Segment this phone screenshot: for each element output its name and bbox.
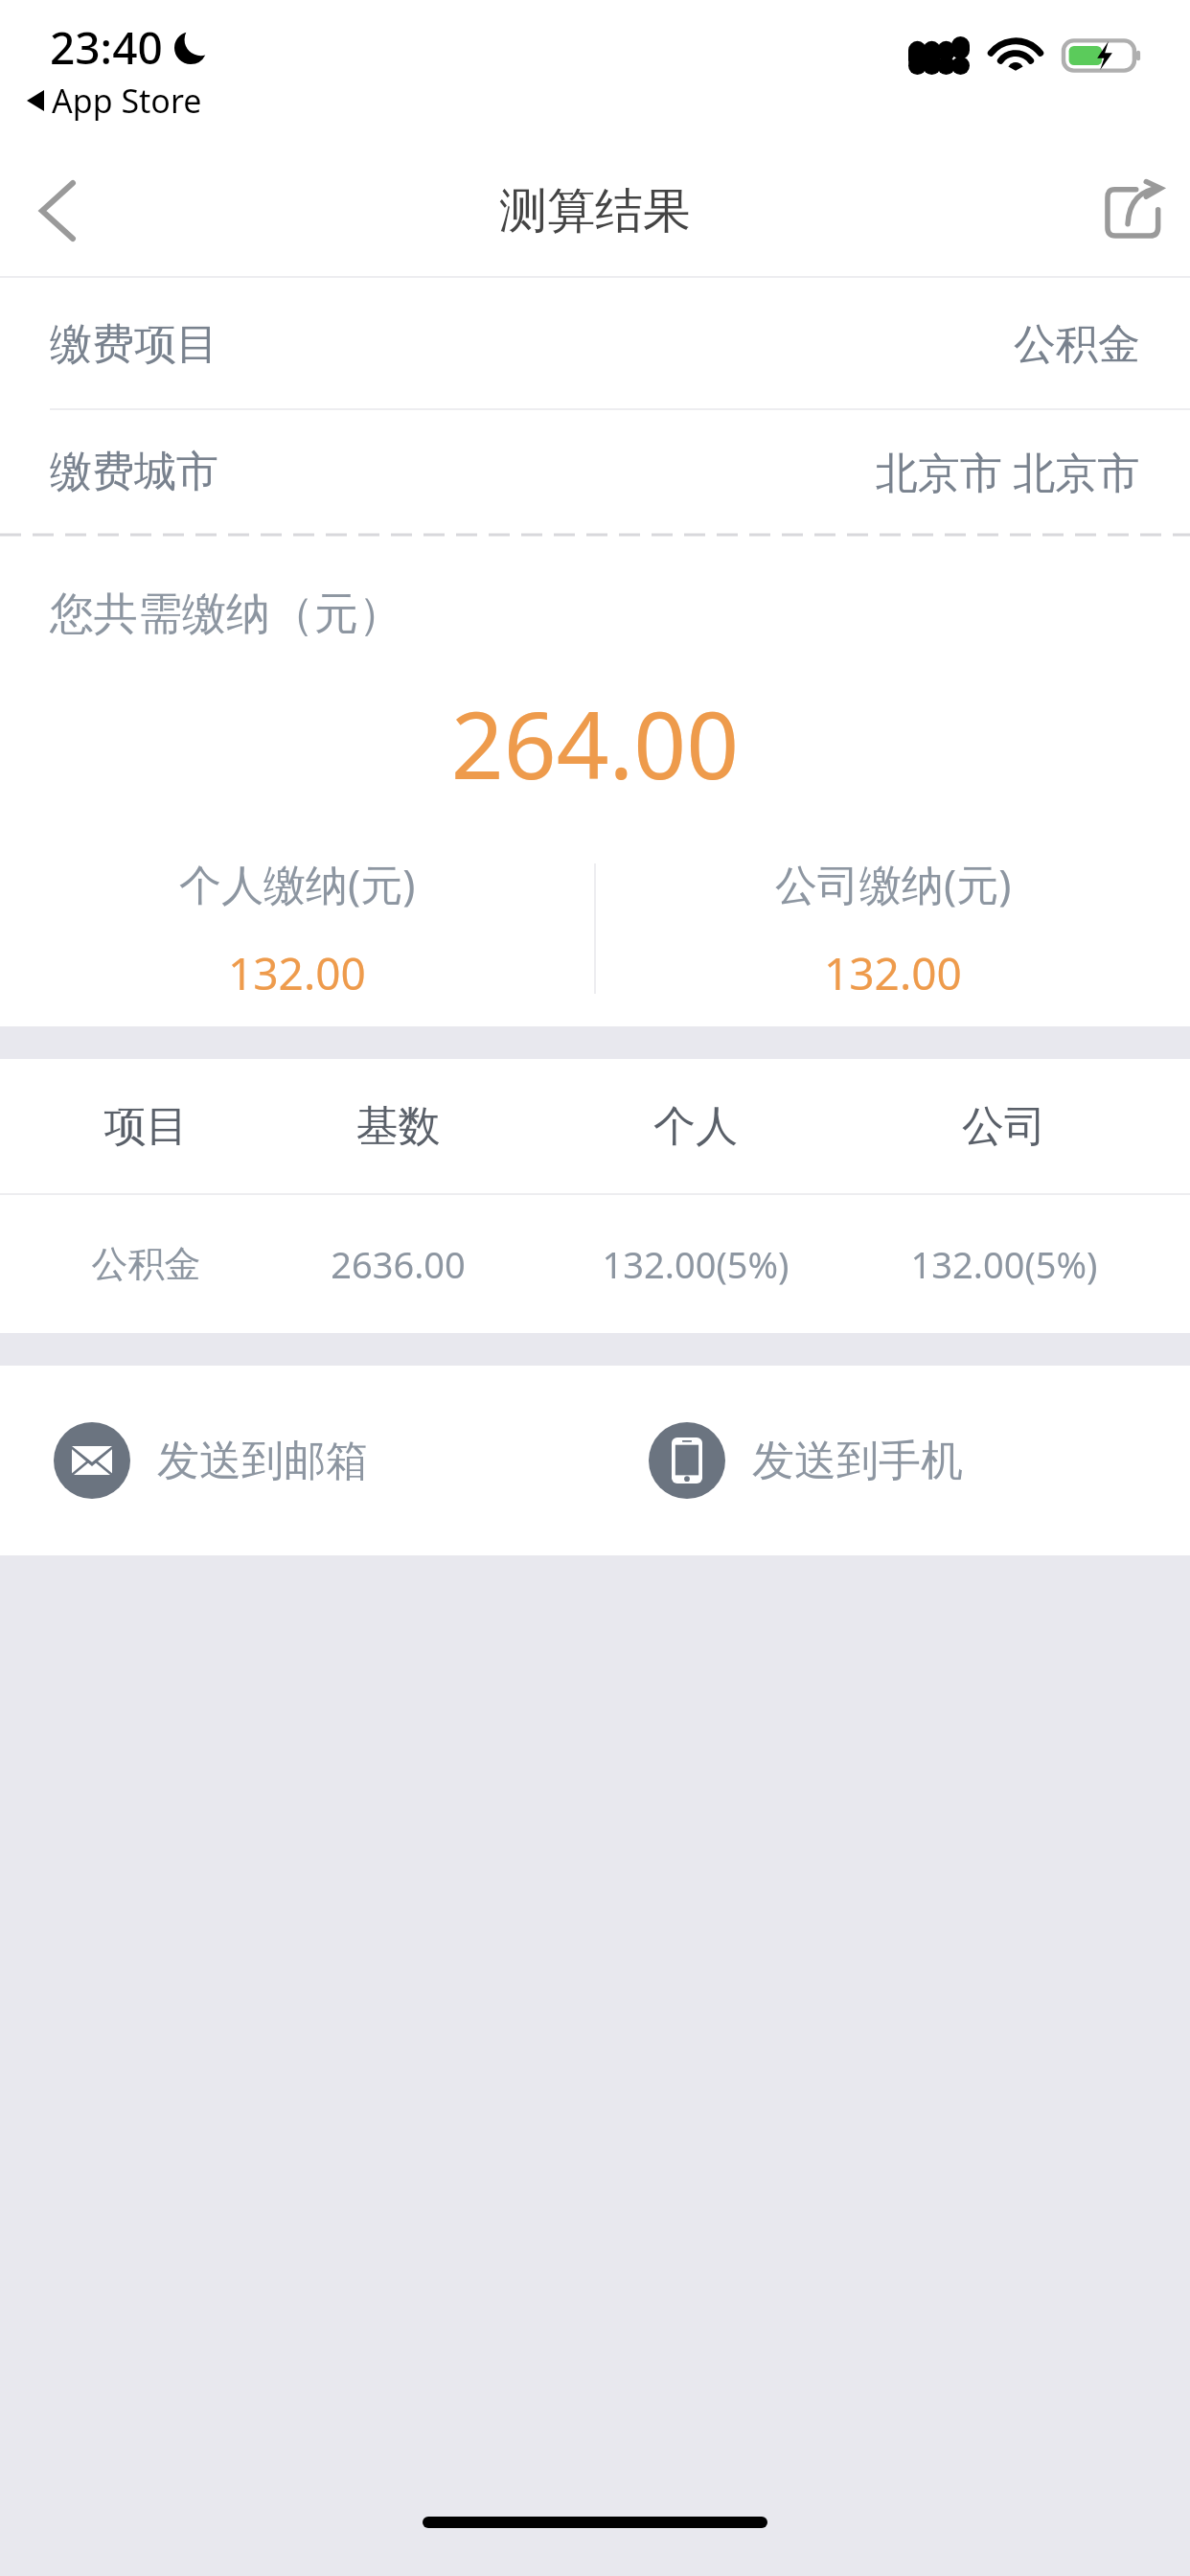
staticText: 个人缴纳(元) <box>179 855 416 912</box>
staticText: 23:40 <box>50 17 163 78</box>
staticText: 132.00(5%) <box>538 1239 853 1289</box>
staticText: 264.00 <box>0 680 1190 806</box>
staticText: 您共需缴纳（元） <box>50 586 402 642</box>
staticText: 公司缴纳(元) <box>775 855 1012 912</box>
staticText: 个人 <box>538 1100 853 1153</box>
staticText: 公司 <box>853 1100 1156 1153</box>
staticText: 基数 <box>258 1100 538 1153</box>
staticText: 132.00 <box>228 943 366 1003</box>
staticText: 缴费城市 <box>50 446 218 498</box>
button[interactable]: 发送到手机 <box>649 1422 963 1499</box>
staticText: 测算结果 <box>499 181 691 241</box>
staticText: 发送到邮箱 <box>157 1435 368 1487</box>
staticText: 缴费项目 <box>50 318 218 371</box>
button[interactable]: 缴费城市 <box>0 410 1190 533</box>
staticText: 132.00 <box>824 943 962 1003</box>
staticText: App Store <box>52 79 202 123</box>
button[interactable]: Back <box>0 153 115 268</box>
staticText: 项目 <box>34 1100 258 1153</box>
staticText: 132.00(5%) <box>853 1239 1156 1289</box>
button[interactable]: Share <box>1075 153 1190 268</box>
staticText: 北京市 北京市 <box>876 443 1140 500</box>
staticText: 2636.00 <box>258 1239 538 1289</box>
button[interactable]: 发送到邮箱 <box>54 1422 368 1499</box>
staticText: 公积金 <box>34 1241 258 1287</box>
button[interactable]: 缴费项目 <box>0 278 1190 410</box>
staticText: 发送到手机 <box>752 1435 963 1487</box>
staticText: 公积金 <box>1014 318 1140 371</box>
